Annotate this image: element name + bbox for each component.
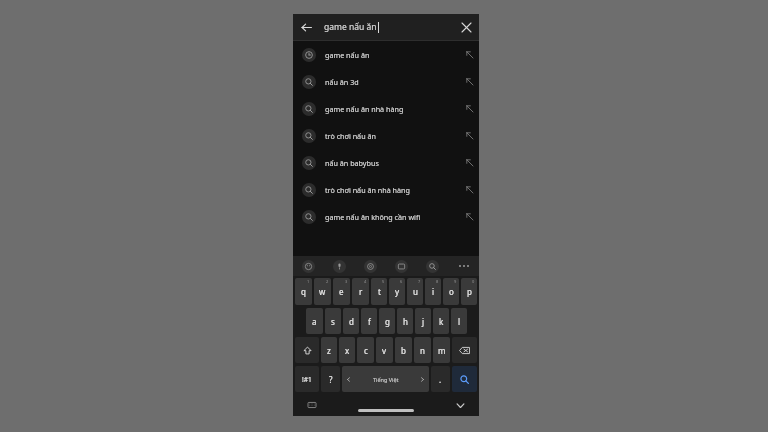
button[interactable]: Insert suggestion	[459, 122, 479, 149]
button[interactable]: g	[379, 308, 395, 334]
button[interactable]: Insert suggestion	[459, 203, 479, 230]
staticText: f	[368, 316, 371, 327]
button[interactable]: Insert suggestion	[459, 95, 479, 122]
button[interactable]: Insert suggestion	[459, 68, 479, 95]
button[interactable]: t	[371, 278, 387, 305]
button[interactable]: s	[325, 308, 341, 334]
button[interactable]: b	[395, 337, 412, 363]
staticText: game nấu ăn	[325, 50, 459, 60]
staticText: n	[420, 345, 425, 356]
button[interactable]: m	[433, 337, 450, 363]
staticText: x	[345, 345, 350, 356]
button[interactable]: u	[407, 278, 423, 305]
staticText: 0	[472, 279, 475, 284]
button[interactable]: w	[314, 278, 331, 305]
staticText: a	[312, 316, 317, 327]
staticText: ?	[329, 374, 333, 385]
button[interactable]: Tiếng Việt	[342, 366, 429, 392]
button[interactable]: q	[295, 278, 312, 305]
staticText: u	[413, 286, 418, 297]
button[interactable]: Stickers	[293, 256, 324, 276]
staticText: z	[327, 345, 331, 356]
staticText: trò chơi nấu ăn nhà hàng	[325, 185, 459, 195]
staticText: 8	[436, 279, 439, 284]
staticText: b	[401, 345, 406, 356]
button[interactable]: a	[306, 308, 323, 334]
staticText: nấu ăn 3d	[325, 77, 459, 87]
staticText: e	[339, 286, 344, 297]
button[interactable]: trò chơi nấu ăn	[293, 122, 479, 149]
staticText: r	[359, 286, 363, 297]
button[interactable]: nấu ăn babybus	[293, 149, 479, 176]
staticText: i	[432, 286, 435, 297]
staticText: g	[385, 316, 390, 327]
staticText: game nấu ăn nhà hàng	[325, 104, 459, 114]
button[interactable]: l	[451, 308, 467, 334]
button[interactable]: Switch keyboard	[305, 398, 319, 412]
button[interactable]: game nấu ăn nhà hàng	[293, 95, 479, 122]
button[interactable]: trò chơi nấu ăn nhà hàng	[293, 176, 479, 203]
button[interactable]: nấu ăn 3d	[293, 68, 479, 95]
button[interactable]: j	[415, 308, 431, 334]
staticText: t	[378, 286, 381, 297]
button[interactable]: Search	[417, 256, 448, 276]
button[interactable]: Voice input	[324, 256, 355, 276]
button[interactable]: v	[376, 337, 393, 363]
button[interactable]: Settings	[355, 256, 386, 276]
button[interactable]: Hide keyboard	[453, 398, 467, 412]
button[interactable]: ?	[321, 366, 340, 392]
button[interactable]: h	[397, 308, 413, 334]
button[interactable]: o	[443, 278, 459, 305]
staticText: 5	[382, 279, 385, 284]
staticText: y	[395, 286, 400, 297]
button[interactable]: p	[461, 278, 477, 305]
staticText: l	[458, 316, 461, 327]
staticText: .	[439, 374, 442, 385]
button[interactable]: y	[389, 278, 405, 305]
staticText: q	[301, 286, 306, 297]
button[interactable]: Clear query	[453, 14, 479, 40]
button[interactable]: e	[333, 278, 350, 305]
staticText: 2	[326, 279, 329, 284]
staticText: 6	[400, 279, 403, 284]
button[interactable]: k	[433, 308, 449, 334]
button[interactable]: game nấu ăn	[293, 41, 479, 68]
button[interactable]: Back	[293, 14, 319, 40]
staticText: s	[331, 316, 335, 327]
button[interactable]: .	[431, 366, 450, 392]
button[interactable]: !#1	[295, 366, 319, 392]
staticText: v	[382, 345, 387, 356]
button[interactable]: Insert suggestion	[459, 176, 479, 203]
button[interactable]: n	[414, 337, 431, 363]
button[interactable]: Insert suggestion	[459, 149, 479, 176]
button[interactable]: d	[343, 308, 359, 334]
button[interactable]: Insert suggestion	[459, 41, 479, 68]
staticText: p	[467, 286, 472, 297]
staticText: 1	[307, 279, 310, 284]
button[interactable]: More	[448, 256, 479, 276]
staticText: 9	[454, 279, 457, 284]
staticText: 3	[345, 279, 348, 284]
staticText: k	[439, 316, 444, 327]
staticText: 4	[364, 279, 367, 284]
button[interactable]: x	[339, 337, 355, 363]
button[interactable]: Search	[452, 366, 477, 392]
button[interactable]: r	[352, 278, 369, 305]
button[interactable]: game nấu ăn không cần wifi	[293, 203, 479, 230]
button[interactable]: c	[357, 337, 374, 363]
button[interactable]: Translate	[386, 256, 417, 276]
button[interactable]: Backspace	[452, 337, 477, 363]
staticText: o	[449, 286, 454, 297]
button[interactable]: z	[321, 337, 337, 363]
staticText: trò chơi nấu ăn	[325, 131, 459, 141]
button[interactable]: i	[425, 278, 441, 305]
staticText: Tiếng Việt	[373, 376, 399, 383]
button[interactable]: Shift	[295, 337, 319, 363]
staticText: game nấu ăn không cần wifi	[325, 212, 459, 222]
staticText: !#1	[302, 375, 312, 384]
staticText: c	[364, 345, 368, 356]
staticText: 7	[418, 279, 421, 284]
staticText: w	[319, 286, 326, 297]
button[interactable]: f	[361, 308, 377, 334]
staticText: m	[438, 345, 446, 356]
